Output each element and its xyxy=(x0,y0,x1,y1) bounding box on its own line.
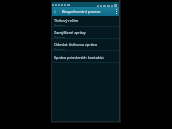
button[interactable]: Back xyxy=(51,7,58,16)
staticText: Vypnuto xyxy=(54,24,65,27)
staticText: Zamýšlené zprávy xyxy=(54,30,86,35)
button[interactable]: Odeslat tísňovou zprávu xyxy=(51,39,121,51)
button[interactable]: Správa primárních kontaktů xyxy=(51,51,121,63)
staticText: Správa primárních kontaktů xyxy=(54,55,104,60)
staticText: Odeslat tísňovou zprávu xyxy=(54,42,98,47)
button[interactable]: More options xyxy=(112,7,121,16)
button[interactable]: Zamýšlené zprávy xyxy=(51,27,121,39)
staticText: Vypnuto xyxy=(54,36,65,39)
staticText: Bezpečnostní pomoc xyxy=(62,9,112,14)
staticText: Vypnuto xyxy=(54,48,65,51)
button[interactable]: Tísňový režim xyxy=(51,15,121,27)
staticText: Tísňový režim xyxy=(54,18,79,23)
